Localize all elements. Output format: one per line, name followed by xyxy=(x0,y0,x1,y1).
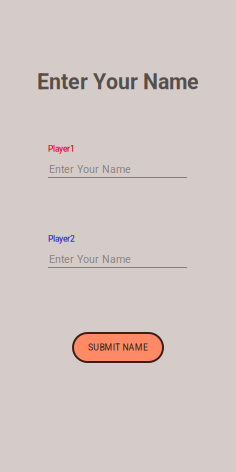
staticText: Enter Your Name xyxy=(37,69,199,94)
staticText: Enter Your Name xyxy=(49,253,131,265)
button[interactable]: Enter Your Name xyxy=(48,163,187,178)
button[interactable]: SUBMIT NAME xyxy=(73,333,163,362)
staticText: Enter Your Name xyxy=(49,163,131,175)
staticText: SUBMIT NAME xyxy=(88,342,148,353)
staticText: Player1 xyxy=(48,144,75,154)
button[interactable]: Enter Your Name xyxy=(48,253,187,268)
staticText: Player2 xyxy=(48,234,75,244)
